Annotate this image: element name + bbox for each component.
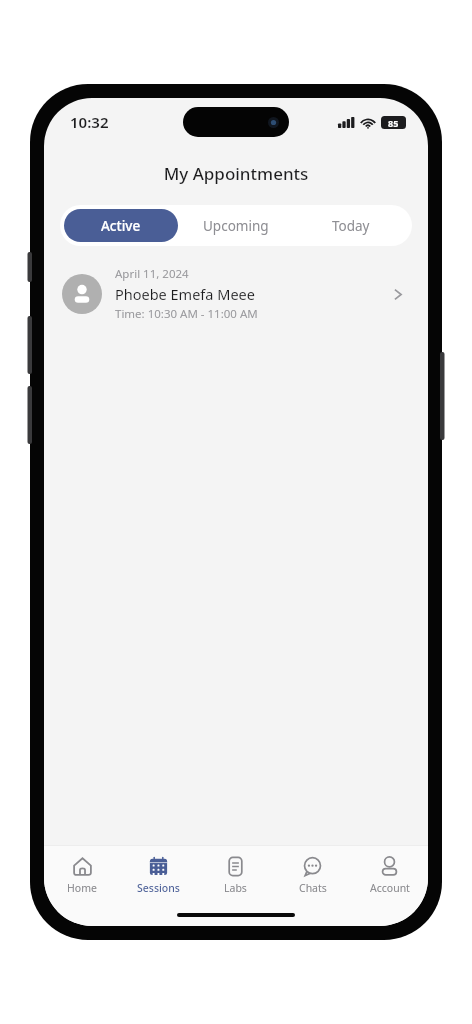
staticText: Time: 10:30 AM - 11:00 AM xyxy=(115,306,258,322)
staticText: 10:32 xyxy=(70,112,109,132)
button[interactable]: Labs xyxy=(197,846,274,904)
button[interactable]: Upcoming xyxy=(178,209,293,242)
staticText: Phoebe Emefa Meee xyxy=(115,284,255,304)
staticText: 85 xyxy=(388,117,399,129)
staticText: Today xyxy=(332,217,370,235)
button[interactable]: Home xyxy=(44,846,120,904)
staticText: Upcoming xyxy=(203,217,269,235)
staticText: Chats xyxy=(299,881,327,895)
other: Open appointment details xyxy=(384,281,410,307)
button[interactable]: Today xyxy=(293,209,408,242)
button[interactable]: April 11, 2024 xyxy=(44,260,428,328)
staticText: Sessions xyxy=(137,881,180,895)
staticText: Account xyxy=(370,881,410,895)
staticText: My Appointments xyxy=(44,162,428,185)
staticText: Active xyxy=(101,217,141,235)
button[interactable]: Active xyxy=(64,209,178,242)
button[interactable]: Sessions xyxy=(120,846,197,904)
staticText: Home xyxy=(67,881,97,895)
button[interactable]: Account xyxy=(351,846,428,904)
button[interactable]: Chats xyxy=(274,846,351,904)
staticText: April 11, 2024 xyxy=(115,266,189,282)
staticText: Labs xyxy=(224,881,247,895)
